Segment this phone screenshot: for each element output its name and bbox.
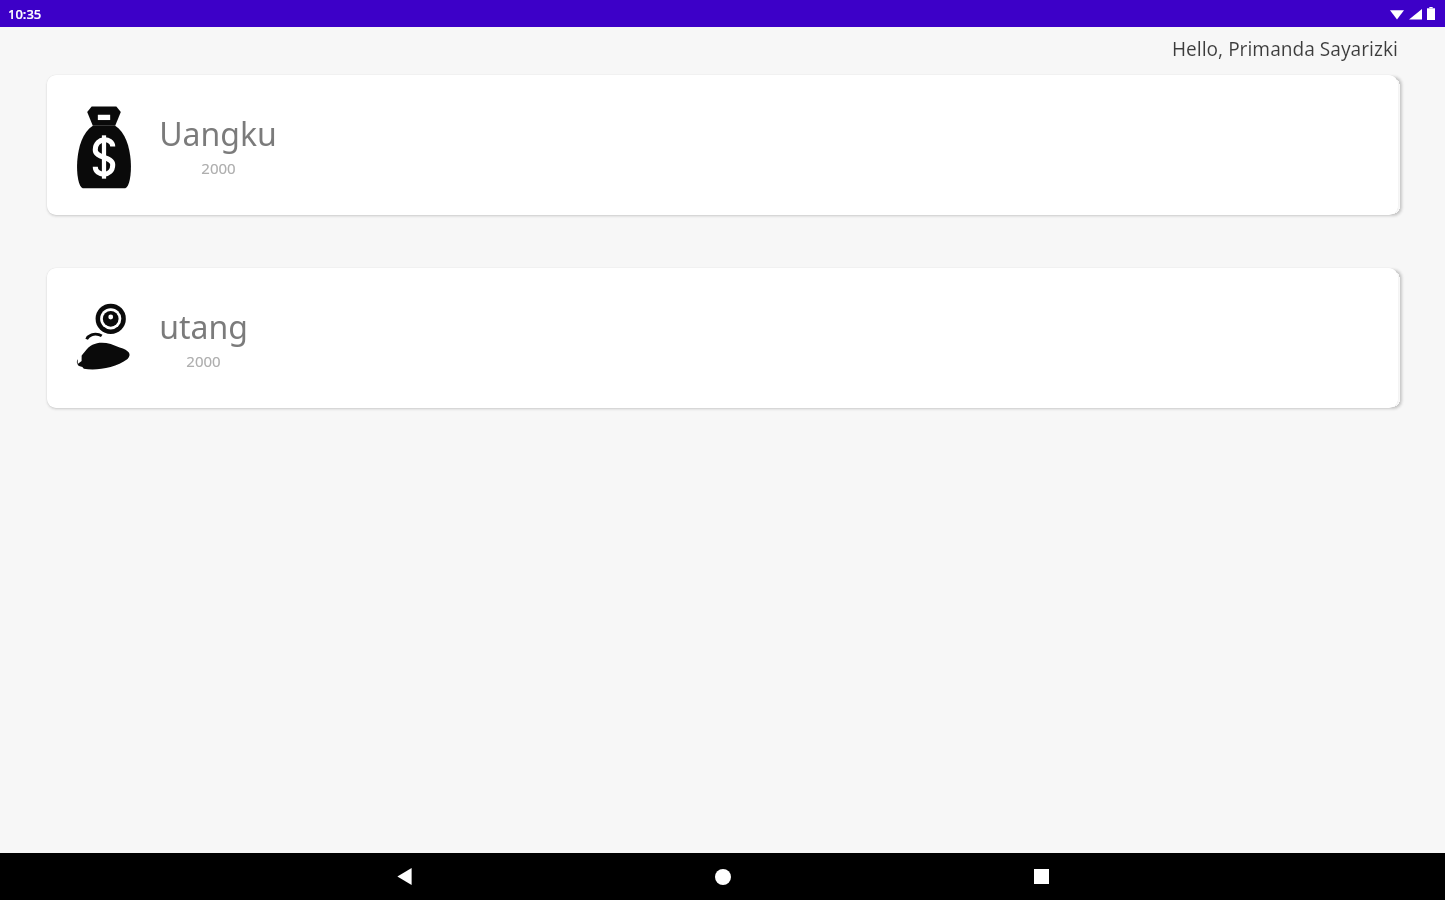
button[interactable]: Home [699, 853, 747, 900]
staticText: 2000 [186, 351, 221, 371]
other: Money bag [76, 97, 132, 193]
staticText: 2000 [201, 158, 236, 178]
button[interactable]: Money bag [47, 75, 1398, 215]
other: Debt, hand with coin [76, 290, 132, 386]
button[interactable]: Back [380, 853, 428, 900]
staticText: Uangku [159, 112, 277, 156]
button[interactable]: Debt, hand with coin [47, 268, 1398, 408]
button[interactable]: Recent apps [1017, 853, 1065, 900]
staticText: 10:35 [8, 5, 42, 23]
staticText: Hello, Primanda Sayarizki [1172, 36, 1398, 62]
staticText: utang [159, 305, 248, 349]
